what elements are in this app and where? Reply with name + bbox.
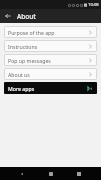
button[interactable]: Instructions — [4, 40, 97, 52]
staticText: More apps — [8, 85, 86, 92]
button[interactable]: More apps — [4, 82, 97, 94]
staticText: Pop up messages — [8, 57, 88, 64]
other: Google Play — [86, 85, 93, 92]
staticText: About us — [8, 71, 88, 78]
staticText: About — [17, 12, 36, 21]
button[interactable]: Back — [16, 168, 28, 180]
staticText: Purpose of the app — [8, 29, 88, 36]
button[interactable]: Recent apps — [73, 168, 85, 180]
button[interactable]: Pop up messages — [4, 54, 97, 66]
button[interactable]: Purpose of the app — [4, 26, 97, 38]
button[interactable]: Back — [3, 11, 13, 21]
button[interactable]: About us — [4, 68, 97, 80]
staticText: Instructions — [8, 43, 88, 50]
staticText: 10:08 — [88, 2, 99, 8]
button[interactable]: Home — [45, 168, 57, 180]
